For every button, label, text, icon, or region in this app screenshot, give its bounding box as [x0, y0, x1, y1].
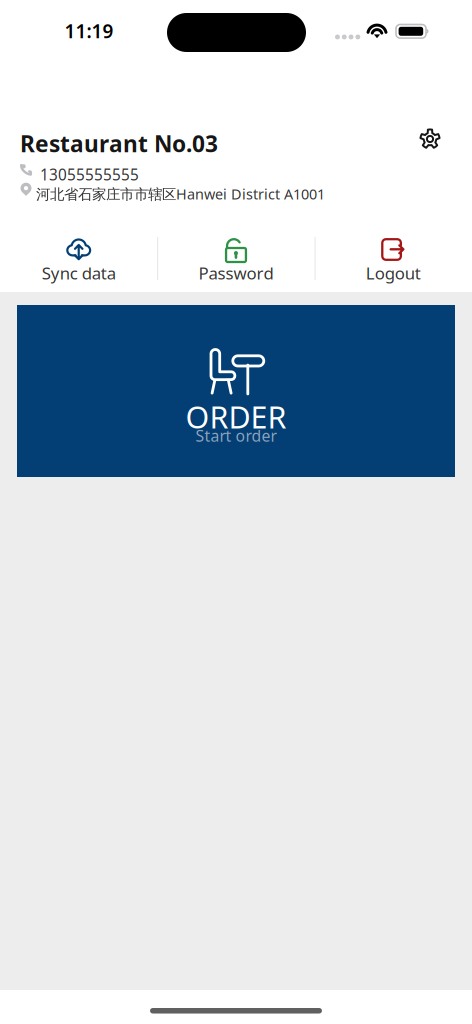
staticText: Start order [195, 425, 276, 446]
staticText: Sync data [42, 261, 116, 284]
button[interactable]: Logout [315, 234, 472, 288]
staticText: Logout [366, 261, 421, 284]
staticText: 11:19 [64, 18, 113, 44]
staticText: 13055555555 [40, 164, 139, 185]
button[interactable]: Settings [408, 117, 452, 161]
button[interactable]: Password [157, 234, 315, 288]
staticText: ORDER [185, 396, 286, 437]
staticText: Restaurant No.03 [20, 128, 218, 159]
staticText: 河北省石家庄市市辖区Hanwei District A1001 [36, 184, 325, 204]
staticText: Password [198, 261, 273, 284]
button[interactable]: ORDER [17, 305, 455, 477]
button[interactable]: Sync data [0, 234, 157, 288]
